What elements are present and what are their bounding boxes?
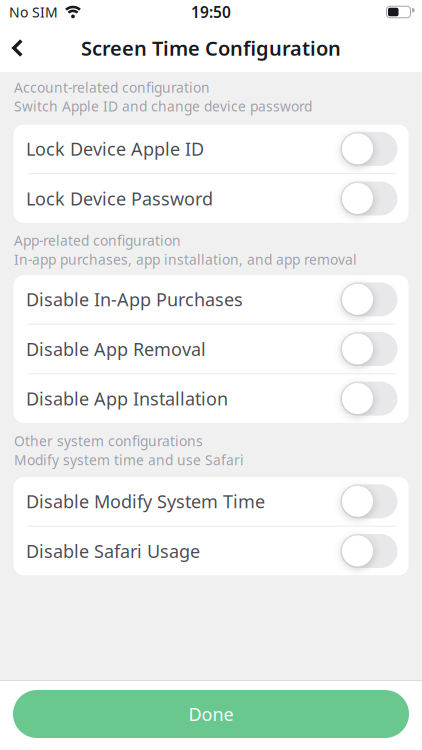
- staticText: Disable In-App Purchases: [26, 287, 243, 312]
- button[interactable]: Disable App Installation: [13, 374, 408, 423]
- staticText: Lock Device Password: [26, 186, 213, 211]
- staticText: Disable App Installation: [26, 386, 228, 411]
- button[interactable]: Lock Device Password: [13, 174, 408, 223]
- button[interactable]: Back: [0, 27, 23, 69]
- button[interactable]: Disable Safari Usage: [13, 527, 408, 575]
- staticText: Disable Modify System Time: [26, 489, 265, 514]
- staticText: Disable App Removal: [26, 337, 206, 361]
- staticText: Lock Device Apple ID: [26, 137, 204, 161]
- button[interactable]: Done: [13, 690, 409, 738]
- staticText: Done: [188, 702, 233, 726]
- staticText: 19:50: [191, 1, 231, 22]
- staticText: App-related configuration: [14, 231, 181, 250]
- button[interactable]: Lock Device Apple ID: [13, 125, 408, 173]
- button[interactable]: Disable App Removal: [13, 325, 408, 373]
- staticText: Account-related configuration: [14, 78, 210, 97]
- staticText: Disable Safari Usage: [26, 539, 200, 563]
- staticText: No SIM: [9, 2, 58, 22]
- staticText: Modify system time and use Safari: [14, 450, 244, 469]
- button[interactable]: Disable Modify System Time: [13, 477, 408, 526]
- button[interactable]: Disable In-App Purchases: [13, 275, 408, 324]
- staticText: Other system configurations: [14, 432, 203, 450]
- staticText: Switch Apple ID and change device passwo…: [14, 97, 312, 116]
- staticText: Screen Time Configuration: [81, 34, 341, 62]
- staticText: In-app purchases, app installation, and …: [14, 250, 357, 269]
